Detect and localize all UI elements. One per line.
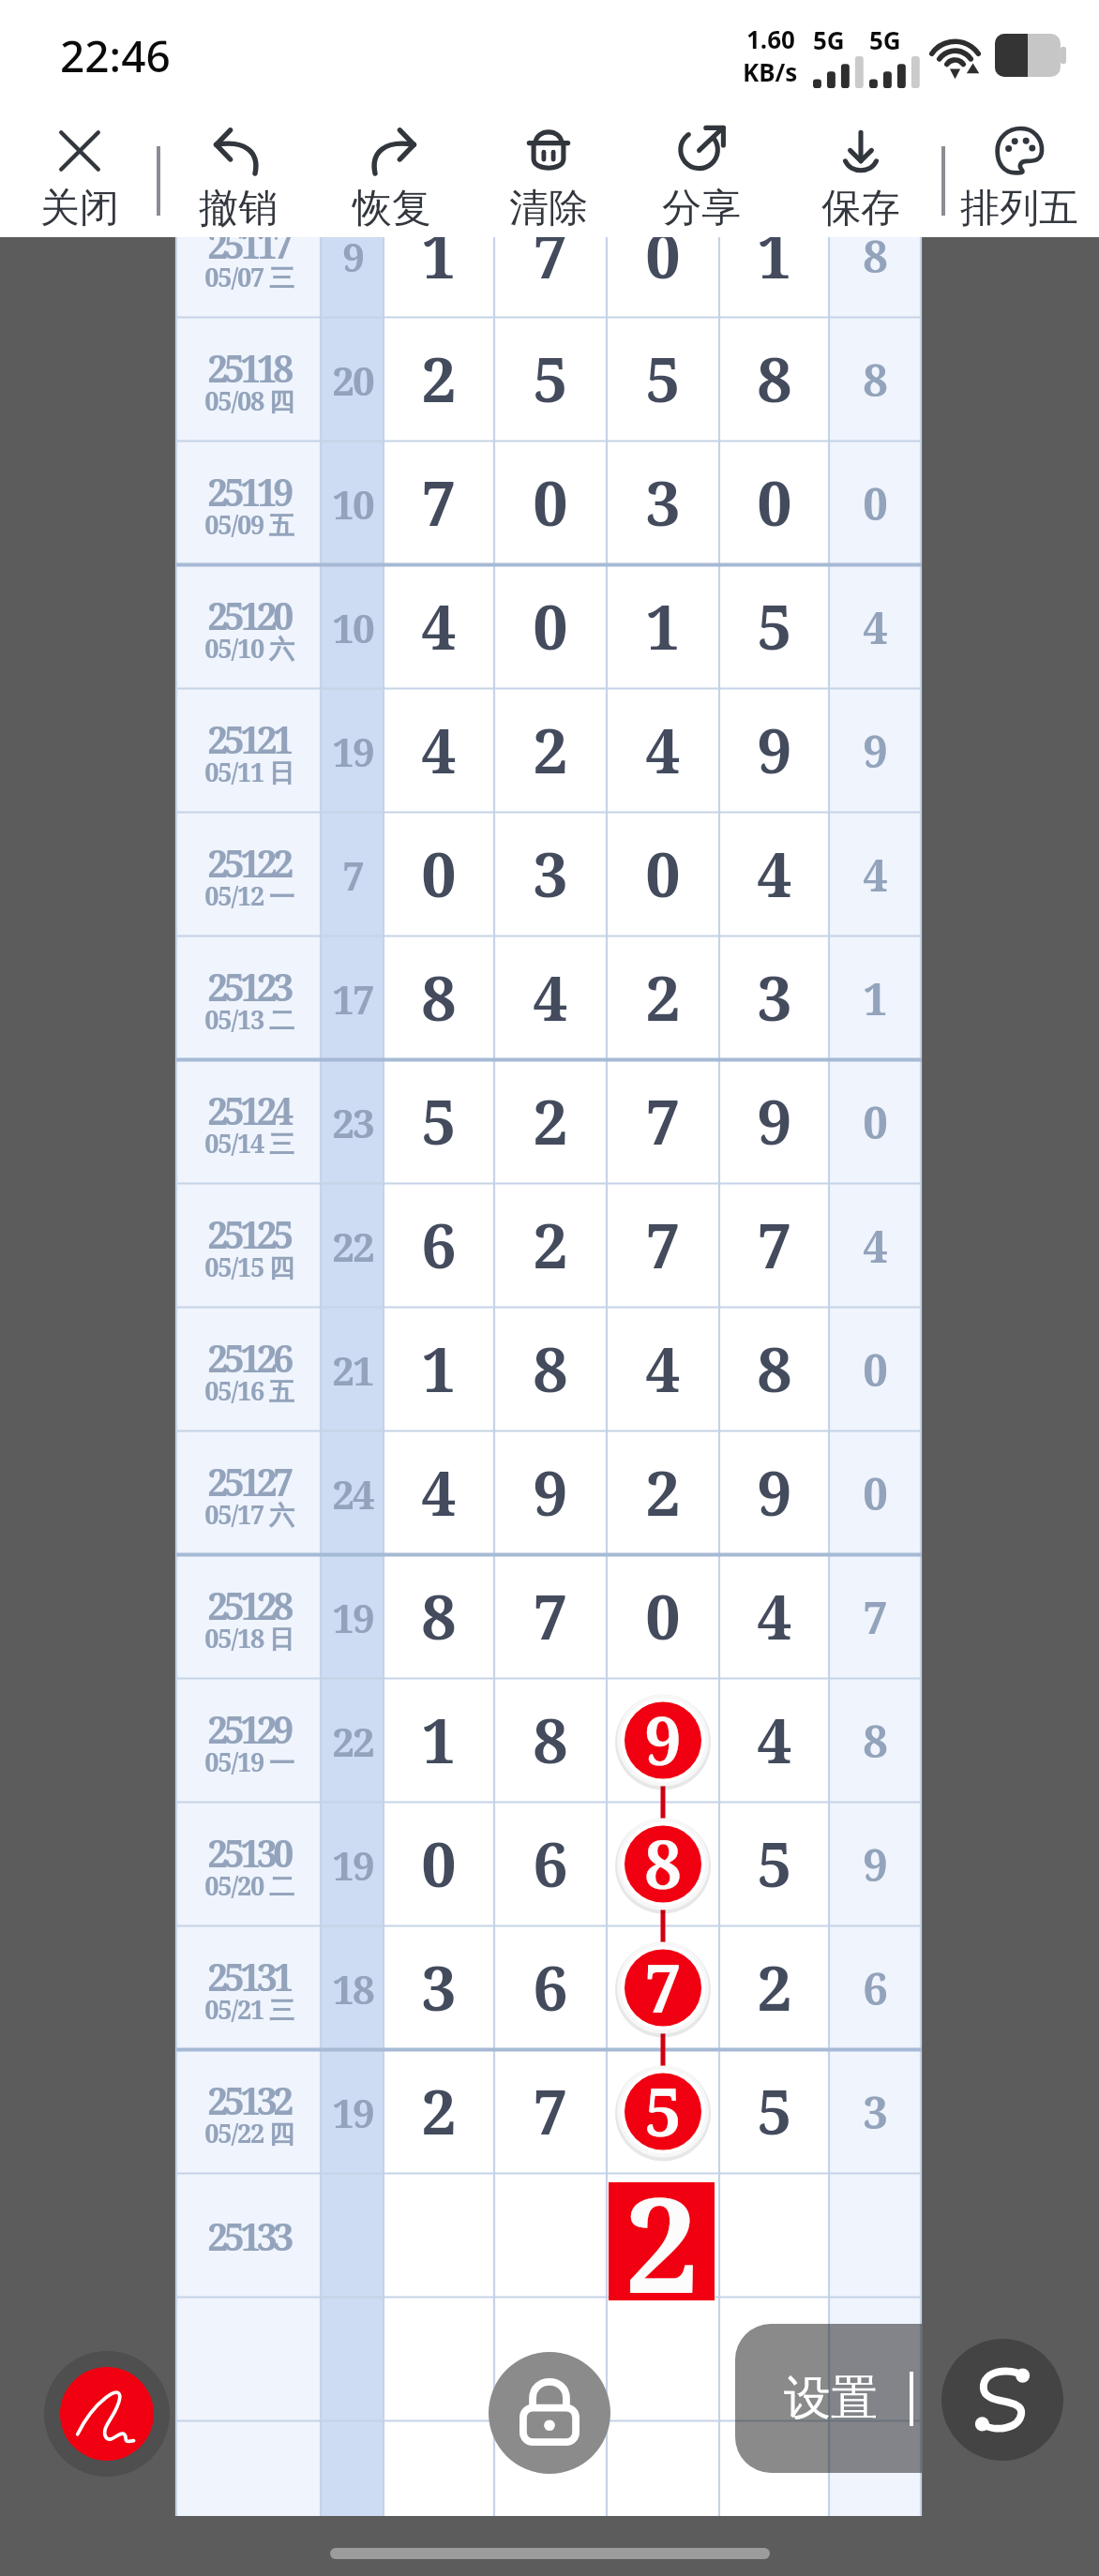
button[interactable]: 2 bbox=[719, 1926, 829, 2050]
button[interactable]: 25130 bbox=[176, 1803, 321, 1926]
button[interactable]: 6 bbox=[494, 1803, 607, 1926]
button[interactable]: 4 bbox=[719, 1679, 829, 1803]
staticText: 25133 bbox=[207, 2211, 290, 2261]
button[interactable]: 9 bbox=[719, 1431, 829, 1555]
button[interactable]: 25117 bbox=[176, 194, 321, 318]
button[interactable]: 8 bbox=[384, 1555, 494, 1679]
button[interactable]: 8 bbox=[607, 1803, 719, 1926]
staticText: 排列五 bbox=[960, 184, 1078, 233]
button[interactable]: 1 bbox=[607, 565, 719, 689]
button[interactable]: 1 bbox=[719, 194, 829, 318]
button[interactable]: 25121 bbox=[176, 689, 321, 813]
button[interactable]: 清除 bbox=[478, 123, 619, 234]
button[interactable]: 8 bbox=[494, 1679, 607, 1803]
button[interactable]: 分享 bbox=[631, 123, 772, 234]
button[interactable]: 4 bbox=[607, 689, 719, 813]
button[interactable]: 5 bbox=[719, 1803, 829, 1926]
button[interactable]: 排列五 bbox=[949, 123, 1090, 234]
button[interactable]: 0 bbox=[607, 194, 719, 318]
button[interactable]: 3 bbox=[494, 813, 607, 936]
staticText: 0 bbox=[533, 459, 568, 544]
staticText: 25129 bbox=[207, 1704, 290, 1754]
button[interactable]: 4 bbox=[494, 936, 607, 1060]
button[interactable]: 25122 bbox=[176, 813, 321, 936]
button[interactable]: 3 bbox=[607, 442, 719, 565]
button[interactable]: 2 bbox=[607, 936, 719, 1060]
button[interactable]: 恢复 bbox=[322, 123, 462, 234]
button[interactable]: 5 bbox=[384, 1060, 494, 1184]
button[interactable]: 9 bbox=[719, 1060, 829, 1184]
button[interactable]: 4 bbox=[719, 1555, 829, 1679]
staticText: 7 bbox=[863, 1587, 888, 1647]
button[interactable]: 7 bbox=[607, 1926, 719, 2050]
button[interactable]: 撤销 bbox=[168, 123, 309, 234]
button[interactable]: 7 bbox=[494, 194, 607, 318]
button[interactable]: 关闭 bbox=[9, 123, 150, 234]
staticText: 19 bbox=[332, 1838, 373, 1892]
button[interactable]: 4 bbox=[384, 689, 494, 813]
button[interactable]: 3 bbox=[384, 1926, 494, 2050]
button[interactable]: 25119 bbox=[176, 442, 321, 565]
button[interactable]: 9 bbox=[607, 1679, 719, 1803]
button[interactable]: 保存 bbox=[790, 123, 931, 234]
button[interactable]: 0 bbox=[384, 813, 494, 936]
button[interactable]: 7 bbox=[719, 1184, 829, 1308]
button[interactable]: 25132 bbox=[176, 2050, 321, 2174]
button[interactable]: 1 bbox=[384, 194, 494, 318]
button[interactable]: 8 bbox=[719, 318, 829, 442]
button[interactable]: 5 bbox=[607, 318, 719, 442]
button[interactable]: 9 bbox=[719, 689, 829, 813]
button[interactable]: 2 bbox=[494, 1184, 607, 1308]
button[interactable]: 25123 bbox=[176, 936, 321, 1060]
button[interactable]: 25120 bbox=[176, 565, 321, 689]
button[interactable]: 25129 bbox=[176, 1679, 321, 1803]
button[interactable]: 25124 bbox=[176, 1060, 321, 1184]
button[interactable]: 7 bbox=[494, 2050, 607, 2174]
button[interactable]: 5 bbox=[607, 2050, 719, 2174]
button[interactable]: 8 bbox=[494, 1308, 607, 1431]
button[interactable]: 0 bbox=[607, 813, 719, 936]
button[interactable]: 6 bbox=[494, 1926, 607, 2050]
button[interactable]: 1 bbox=[384, 1679, 494, 1803]
button[interactable]: 7 bbox=[384, 442, 494, 565]
button[interactable]: 7 bbox=[494, 1555, 607, 1679]
button[interactable]: 4 bbox=[719, 813, 829, 936]
button[interactable]: 6 bbox=[384, 1184, 494, 1308]
staticText: 05/17 六 bbox=[204, 1497, 294, 1532]
button[interactable]: 25125 bbox=[176, 1184, 321, 1308]
button[interactable]: 1 bbox=[384, 1308, 494, 1431]
button[interactable]: 2 bbox=[607, 1431, 719, 1555]
button[interactable]: 3 bbox=[719, 936, 829, 1060]
button[interactable]: 25128 bbox=[176, 1555, 321, 1679]
button[interactable] bbox=[609, 2182, 715, 2300]
button[interactable]: 25118 bbox=[176, 318, 321, 442]
button[interactable]: 2 bbox=[384, 318, 494, 442]
button[interactable]: 5 bbox=[719, 2050, 829, 2174]
button[interactable]: 4 bbox=[384, 565, 494, 689]
button[interactable]: 0 bbox=[494, 442, 607, 565]
button[interactable]: 4 bbox=[384, 1431, 494, 1555]
button[interactable]: 2 bbox=[494, 689, 607, 813]
button[interactable]: 25126 bbox=[176, 1308, 321, 1431]
button[interactable]: 25133 bbox=[176, 2174, 321, 2298]
button[interactable]: 0 bbox=[719, 442, 829, 565]
button[interactable]: 2 bbox=[384, 2050, 494, 2174]
button[interactable]: 9 bbox=[494, 1431, 607, 1555]
button[interactable]: 25131 bbox=[176, 1926, 321, 2050]
button[interactable]: 0 bbox=[607, 1555, 719, 1679]
button[interactable]: 0 bbox=[384, 1803, 494, 1926]
button[interactable]: 设置 bbox=[735, 2324, 922, 2473]
button[interactable]: 5 bbox=[494, 318, 607, 442]
button[interactable]: 25127 bbox=[176, 1431, 321, 1555]
button[interactable]: 8 bbox=[719, 1308, 829, 1431]
button[interactable]: 8 bbox=[384, 936, 494, 1060]
button[interactable]: 画笔 bbox=[44, 2351, 170, 2477]
button[interactable]: 7 bbox=[607, 1184, 719, 1308]
button[interactable]: 2 bbox=[494, 1060, 607, 1184]
button[interactable]: 锁定 bbox=[489, 2352, 610, 2474]
button[interactable]: S 工具 bbox=[941, 2339, 1063, 2461]
button[interactable]: 0 bbox=[494, 565, 607, 689]
button[interactable]: 7 bbox=[607, 1060, 719, 1184]
button[interactable]: 4 bbox=[607, 1308, 719, 1431]
button[interactable]: 5 bbox=[719, 565, 829, 689]
